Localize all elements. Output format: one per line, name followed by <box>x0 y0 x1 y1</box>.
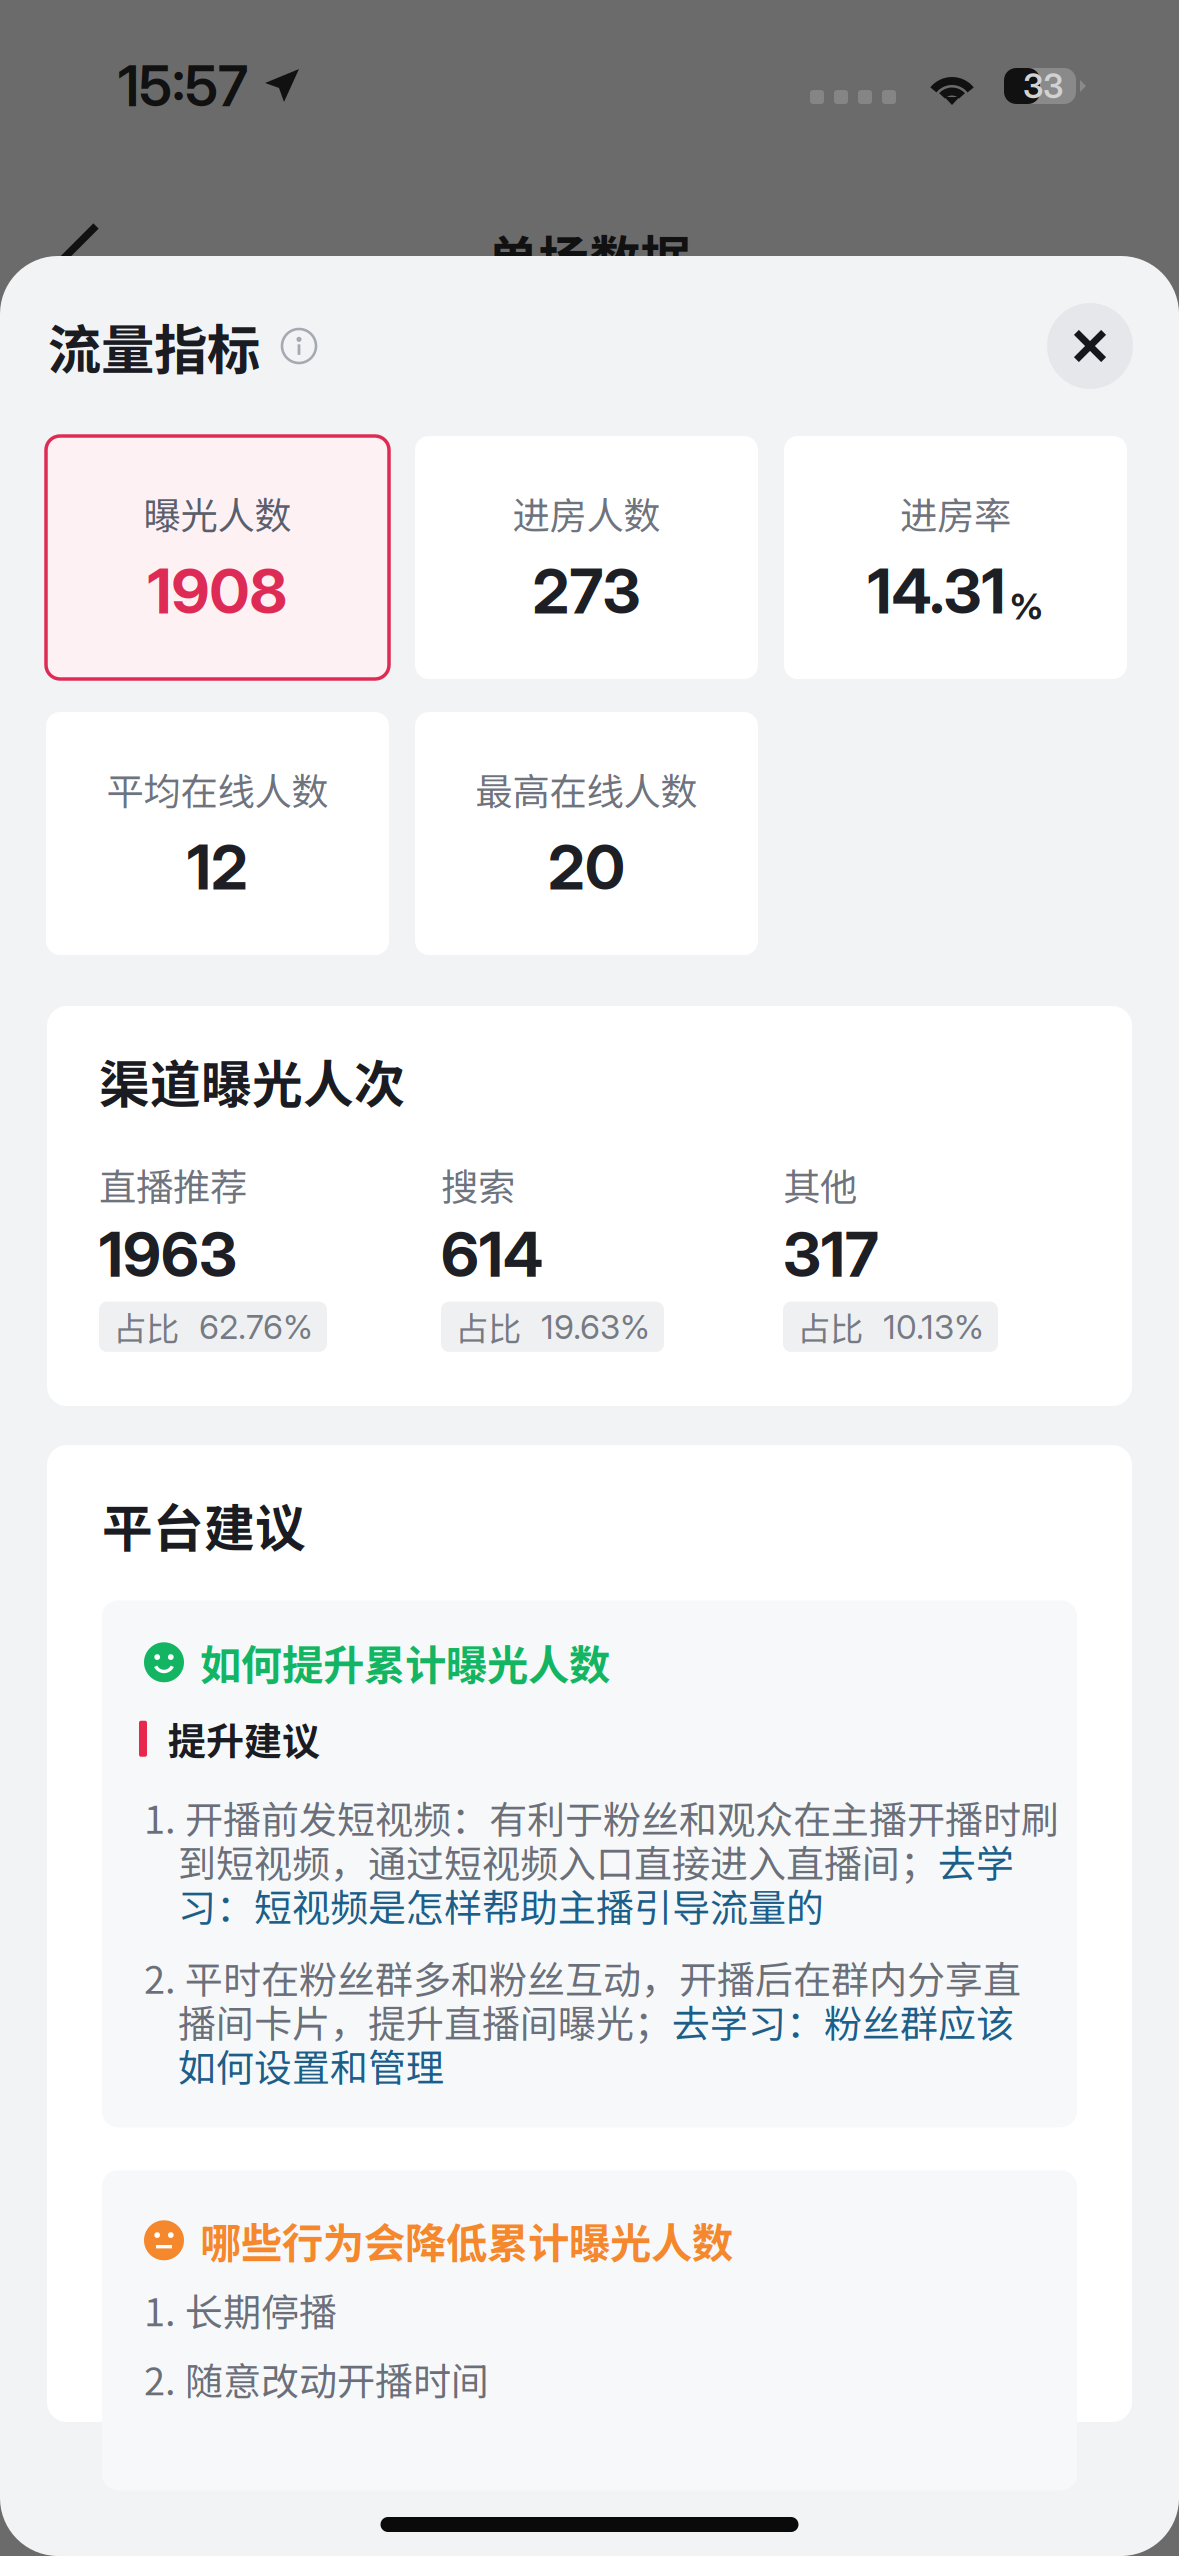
staticText: 流量指标 <box>48 307 260 385</box>
staticText: 1. 长期停播 <box>144 2282 337 2337</box>
button[interactable]: 进房率 <box>784 436 1127 679</box>
staticText: 单场数据 <box>487 219 691 293</box>
staticText: 如何提升累计曝光人数 <box>200 1632 610 1692</box>
staticText: 1963 <box>99 1217 237 1292</box>
staticText: 进房人数 <box>512 486 660 540</box>
staticText: 33 <box>1023 66 1063 106</box>
staticText: 平台建议 <box>102 1488 306 1561</box>
staticText: 19.63% <box>541 1307 650 1347</box>
staticText: 平均在线人数 <box>106 762 328 816</box>
staticText: 1. 开播前发短视频：有利于粉丝和观众在主播开播时刷 <box>144 1790 1059 1845</box>
staticText: 如何设置和管理 <box>178 2038 444 2093</box>
staticText: 273 <box>532 554 640 628</box>
button[interactable]: 平均在线人数 <box>46 712 389 955</box>
staticText: 哪些行为会降低累计曝光人数 <box>200 2210 733 2270</box>
staticText: 占比 <box>113 1303 179 1351</box>
staticText: % <box>1009 585 1043 628</box>
staticText: 搜索 <box>441 1157 515 1211</box>
button[interactable]: 进房人数 <box>415 436 758 679</box>
button[interactable]: 最高在线人数 <box>415 712 758 955</box>
staticText: 15:57 <box>118 52 248 120</box>
staticText: 占比 <box>455 1303 521 1351</box>
staticText: 12 <box>187 830 248 904</box>
staticText: 2. 随意改动开播时间 <box>144 2351 489 2406</box>
staticText: 62.76% <box>199 1307 313 1347</box>
staticText: 习：短视频是怎样帮助主播引导流量的 <box>178 1878 824 1933</box>
staticText: 提升建议 <box>168 1711 320 1766</box>
staticText: 614 <box>441 1217 543 1292</box>
staticText: 到短视频，通过短视频入口直接进入直播间； <box>178 1834 938 1889</box>
staticText: 播间卡片，提升直播间曝光； <box>178 1994 672 2049</box>
staticText: 2. 平时在粉丝群多和粉丝互动，开播后在群内分享直 <box>144 1950 1021 2005</box>
staticText: 渠道曝光人次 <box>99 1044 405 1117</box>
staticText: 直播推荐 <box>99 1157 247 1211</box>
staticText: 20 <box>548 830 625 904</box>
staticText: 317 <box>783 1217 879 1292</box>
button[interactable]: 关闭 <box>1047 303 1133 389</box>
staticText: 14.31 <box>867 554 1005 628</box>
staticText: 10.13% <box>883 1307 984 1347</box>
staticText: 去学 <box>938 1834 1014 1889</box>
staticText: 曝光人数 <box>143 486 291 540</box>
staticText: 去学习：粉丝群应该 <box>672 1994 1014 2049</box>
button[interactable]: 曝光人数 <box>46 436 389 679</box>
staticText: 其他 <box>783 1157 857 1211</box>
staticText: 占比 <box>797 1303 863 1351</box>
staticText: 最高在线人数 <box>475 762 697 816</box>
staticText: 1908 <box>147 554 287 628</box>
staticText: 进房率 <box>900 486 1011 540</box>
